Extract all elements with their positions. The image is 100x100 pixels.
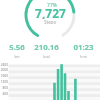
staticText: 210.16 — [34, 42, 59, 51]
button[interactable] — [32, 0, 68, 34]
staticText: 5.56 — [9, 42, 25, 51]
staticText: 400 — [2, 92, 8, 96]
staticText: 77% — [47, 2, 57, 9]
staticText: Steps — [44, 19, 56, 24]
button[interactable] — [70, 43, 98, 59]
staticText: h:m — [80, 54, 87, 59]
staticText: 1200 — [0, 80, 8, 84]
button[interactable] — [2, 43, 32, 59]
staticText: 01:23 — [73, 42, 94, 51]
staticText: 2000 — [0, 68, 8, 72]
staticText: kcal — [43, 54, 50, 59]
staticText: 800 — [2, 86, 8, 90]
staticText: 2400 — [0, 63, 8, 67]
staticText: 7,727 — [35, 5, 66, 19]
staticText: 1600 — [0, 74, 8, 78]
staticText: km — [14, 54, 20, 59]
button[interactable] — [34, 43, 64, 59]
